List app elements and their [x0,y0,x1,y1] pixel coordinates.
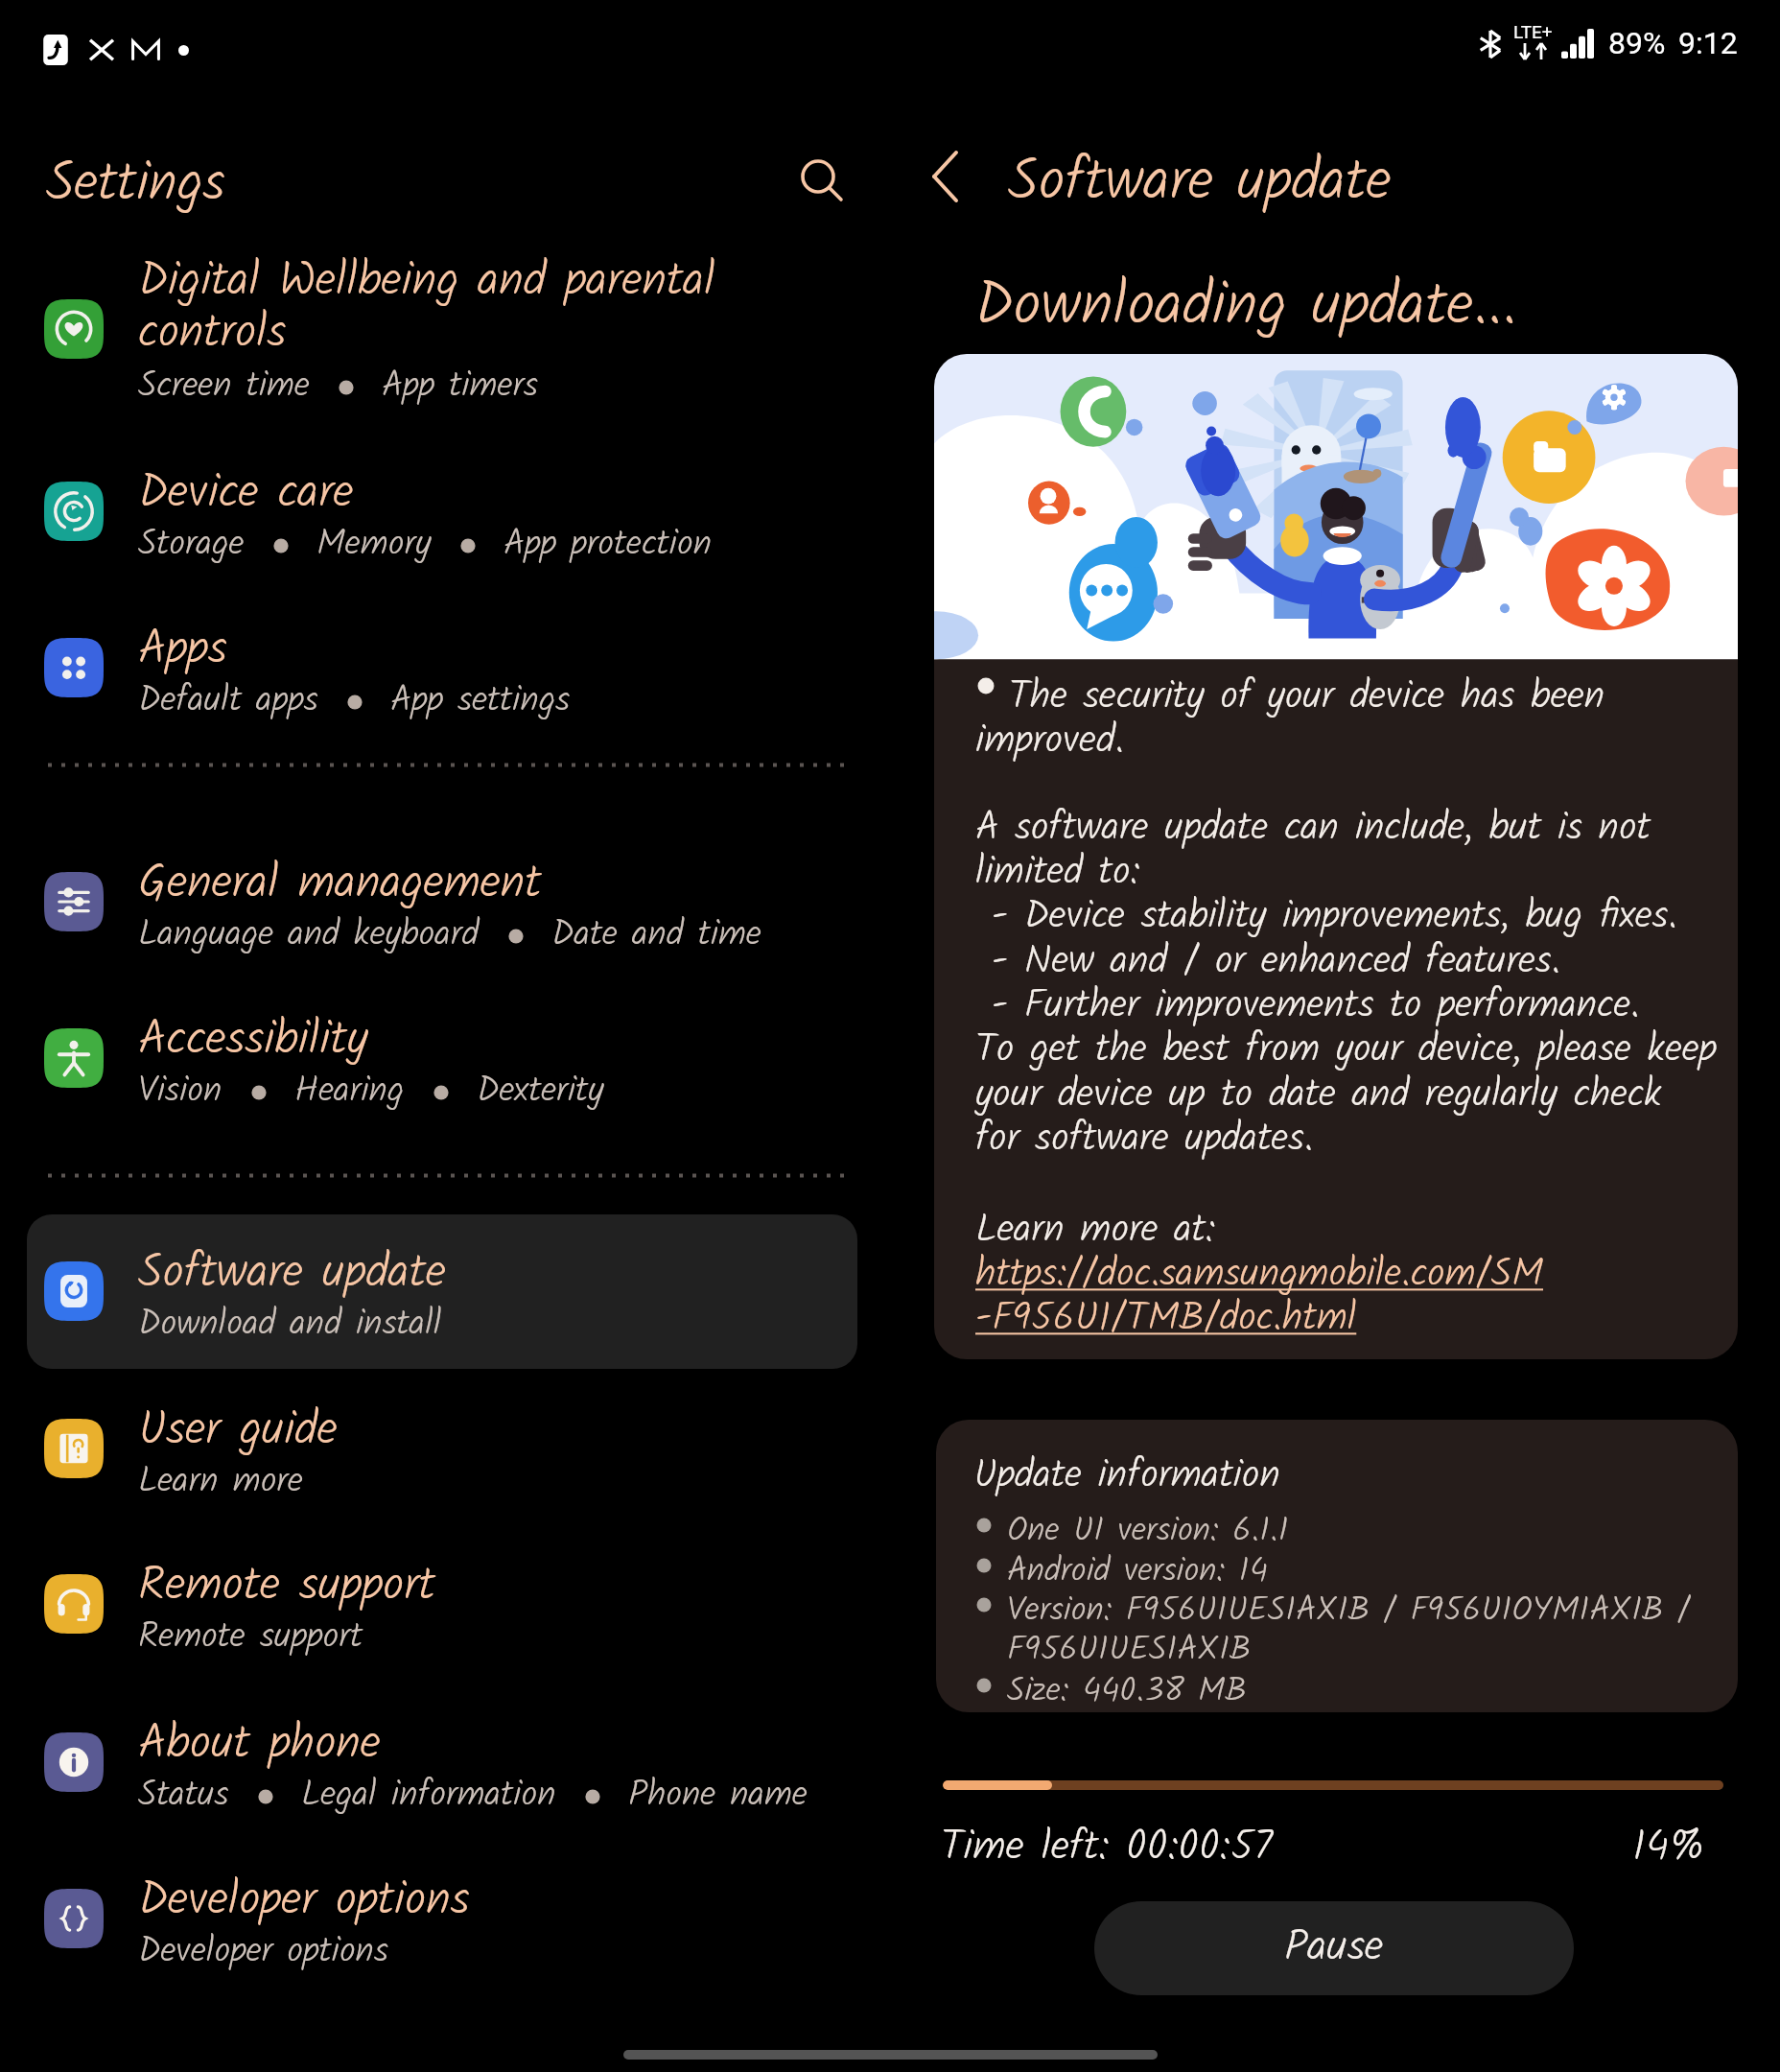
staticText: Digital Wellbeing and parental controls [138,245,715,371]
staticText: - Further improvements to performance. [975,975,1640,1037]
staticText: 9:12 [1678,25,1738,61]
staticText: The security of your device has been [1009,666,1605,728]
button[interactable] [27,982,857,1134]
button[interactable] [27,1843,857,1994]
staticText: Downloading update... [974,258,1517,356]
staticText: Android version: 14 [1007,1545,1269,1599]
staticText: About phone [138,1707,381,1782]
staticText: User guide [138,1394,338,1469]
staticText: Dexterity [477,1064,604,1120]
button[interactable] [27,436,857,587]
staticText: Download and install [138,1297,442,1354]
staticText: Memory [316,517,432,574]
staticText: Developer options [138,1864,470,1939]
staticText: 14% [1632,1814,1705,1881]
staticText: Time left: 00:00:57 [941,1814,1274,1881]
staticText: Storage [138,517,245,574]
staticText: limited to: [975,841,1140,904]
staticText: Software update [138,1236,446,1311]
staticText: Learn more at: [975,1199,1216,1261]
button[interactable] [27,253,857,405]
staticText: - New and / or enhanced features. [975,930,1561,993]
staticText: Phone name [628,1768,808,1825]
staticText: Hearing [294,1064,405,1120]
button[interactable] [27,1528,857,1680]
staticText: F956U1UES1AXIB [1007,1624,1252,1678]
staticText: Vision [138,1064,222,1120]
button[interactable] [27,592,857,743]
staticText: Remote support [138,1610,363,1666]
staticText: App timers [382,359,539,415]
staticText: Status [138,1768,229,1825]
staticText: App protection [504,517,712,574]
button[interactable] [27,826,857,977]
staticText: Legal information [301,1768,556,1825]
staticText: for software updates. [975,1108,1314,1170]
staticText: Apps [138,613,227,688]
staticText: Learn more [138,1454,303,1511]
staticText: Language and keyboard [138,907,480,964]
button[interactable] [27,1214,857,1369]
staticText: To get the best from your device, please… [975,1019,1717,1081]
staticText: Device care [138,457,354,531]
button[interactable]: Pause [1094,1901,1574,1995]
staticText: Pause [1284,1914,1384,1983]
button[interactable] [934,354,1738,1359]
staticText: Remote support [138,1549,435,1624]
button[interactable] [936,1420,1738,1712]
staticText: https://doc.samsungmobile.com/SM [975,1243,1544,1306]
staticText: Version: F956U1UES1AXIB / F956U1OYM1AXIB… [1007,1585,1691,1638]
staticText: Date and time [551,907,761,964]
staticText: General management [138,847,542,922]
button[interactable] [27,1686,857,1838]
staticText: One UI version: 6.1.1 [1007,1505,1289,1559]
staticText: Developer options [138,1924,388,1981]
staticText: Size: 440.38 MB [1007,1665,1247,1719]
staticText: App settings [390,673,571,730]
staticText: LTE+ [1513,21,1553,42]
staticText: Settings [46,141,225,228]
staticText: your device up to date and regularly che… [975,1064,1662,1126]
staticText: - Device stability improvements, bug fix… [975,885,1677,948]
button[interactable]: Search [787,146,849,207]
staticText: 89% [1608,25,1666,61]
staticText: Default apps [138,673,318,730]
staticText: Screen time [138,359,310,415]
staticText: improved. [975,710,1125,772]
staticText: Software update [1008,136,1392,229]
staticText: -F956U1/TMB/doc.html [975,1287,1357,1350]
staticText: Update information [973,1445,1280,1507]
button[interactable] [27,1373,857,1524]
staticText: Accessibility [138,1003,368,1078]
button[interactable]: Back [913,142,982,211]
staticText: A software update can include, but is no… [975,797,1651,859]
